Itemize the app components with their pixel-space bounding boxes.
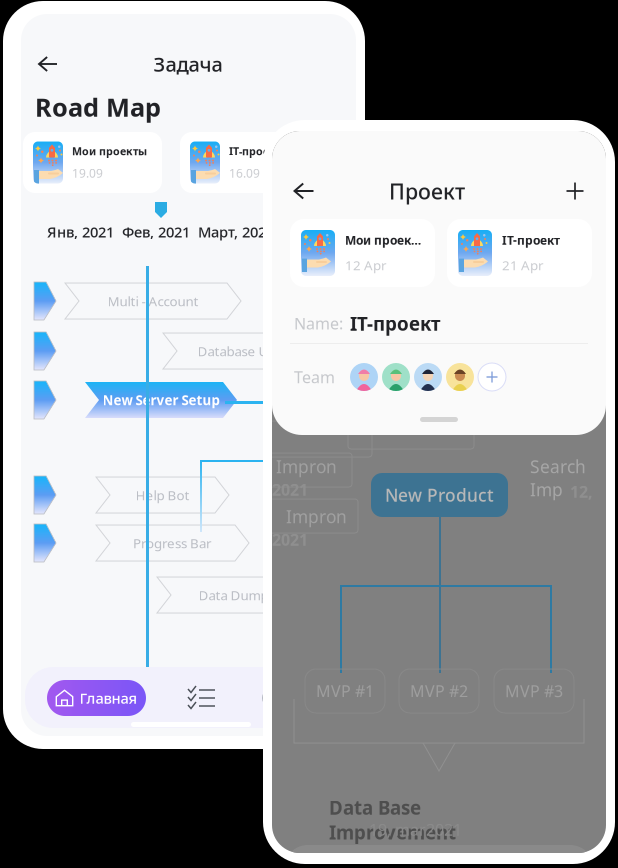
staticText: Март, 2021	[198, 222, 274, 241]
button[interactable]: Data Dump	[157, 577, 310, 613]
button[interactable]: Add	[558, 175, 592, 207]
button[interactable]: MVP #1	[305, 669, 385, 713]
button[interactable]: Progress Bar	[96, 525, 249, 561]
staticText: Database Update	[197, 342, 304, 360]
button[interactable]: New Server Setup	[85, 382, 237, 418]
staticText: IT-проект	[502, 232, 560, 248]
button[interactable]: Tasks	[188, 687, 214, 709]
button[interactable]: Database Update	[163, 333, 339, 369]
staticText: Мои проекты	[72, 144, 147, 158]
staticText: Multi - Account	[107, 292, 198, 310]
staticText: New Product	[385, 483, 494, 506]
button[interactable]: Profile	[263, 686, 287, 710]
staticText: Data Base Improvement	[329, 795, 456, 845]
button[interactable]: Главная	[47, 680, 146, 716]
button[interactable]: Multi - Account	[65, 283, 241, 319]
button[interactable]: IT-проект	[180, 132, 319, 193]
staticText: Team	[294, 366, 335, 388]
button[interactable]: Add member	[478, 363, 506, 391]
staticText: Name:	[294, 313, 343, 334]
button[interactable]: MVP #2	[399, 669, 479, 713]
staticText: 19, mar2021	[369, 819, 462, 840]
button[interactable]: MVP #3	[494, 669, 574, 713]
staticText: 2021	[272, 529, 308, 550]
button[interactable]: Back	[30, 48, 66, 80]
staticText: IT-проект	[350, 311, 440, 336]
staticText: New Server Setup	[102, 391, 219, 409]
staticText: MVP #3	[505, 680, 563, 702]
staticText: 12 Apr	[345, 256, 387, 274]
staticText: Задача	[153, 51, 222, 77]
button[interactable]: Help Bot	[96, 477, 229, 513]
staticText: Help Bot	[135, 486, 189, 504]
button[interactable]: Мои проекты	[23, 132, 162, 193]
button[interactable]: Back	[286, 175, 322, 207]
staticText: 16.09	[229, 165, 260, 181]
staticText: 21 Apr	[502, 256, 544, 274]
staticText: Progress Bar	[133, 534, 212, 552]
staticText: Янв, 2021	[47, 222, 114, 241]
staticText: MVP #2	[410, 680, 468, 702]
staticText: Фев, 2021	[122, 222, 190, 241]
staticText: Search Imp	[530, 455, 586, 501]
button[interactable]: IT-проект	[447, 219, 592, 287]
staticText: Главная	[79, 688, 137, 708]
staticText: Impron	[276, 455, 337, 478]
staticText: 19.09	[72, 165, 103, 181]
staticText: Impron	[286, 505, 347, 528]
staticText: Road Map	[35, 90, 161, 124]
staticText: 12,	[570, 481, 593, 502]
staticText: MVP #1	[316, 680, 374, 702]
button[interactable]: Мои проекты	[290, 219, 435, 287]
staticText: Мои проекты	[345, 232, 421, 248]
staticText: IT-проект	[229, 144, 281, 158]
staticText: Проект	[389, 177, 465, 205]
staticText: 2021	[272, 479, 308, 500]
staticText: Data Dump	[198, 586, 268, 604]
